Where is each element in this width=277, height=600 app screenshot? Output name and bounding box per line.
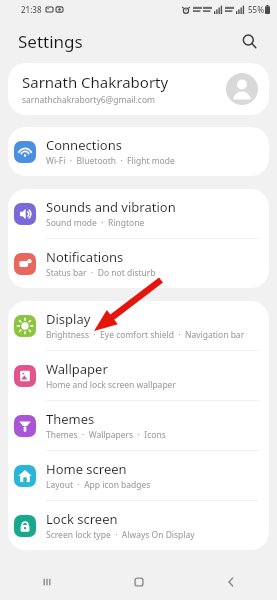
staticText: Brightness · Eye comfort shield · Naviga… (46, 329, 245, 341)
staticText: Themes · Wallpapers · Icons (46, 429, 166, 441)
button[interactable]: Wallpaper (8, 351, 269, 400)
button[interactable]: Sarnath Chakraborty (8, 63, 269, 115)
button[interactable]: Lock screen (8, 501, 269, 550)
button[interactable]: Home screen (8, 451, 269, 500)
button[interactable]: Connections (8, 127, 269, 176)
button[interactable]: Themes (8, 401, 269, 450)
staticText: Status bar · Do not disturb (46, 267, 156, 279)
staticText: Settings (18, 30, 83, 53)
button[interactable]: Display (8, 301, 269, 350)
staticText: Screen lock type · Always On Display (46, 529, 195, 541)
staticText: Lock screen (46, 510, 118, 528)
staticText: Notifications (46, 248, 124, 266)
staticText: Wi-Fi · Bluetooth · Flight mode (46, 155, 175, 167)
staticText: Sound mode · Ringtone (46, 217, 145, 229)
staticText: Sounds and vibration (46, 198, 176, 216)
staticText: Connections (46, 136, 122, 154)
staticText: Home screen (46, 460, 127, 478)
button[interactable]: Back (185, 564, 277, 600)
staticText: Wallpaper (46, 360, 108, 378)
staticText: 21:38 (21, 4, 42, 15)
button[interactable]: Recents (0, 564, 93, 600)
staticText: Home and lock screen wallpaper (46, 379, 176, 391)
staticText: sarnathchakraborty6@gmail.com (22, 94, 156, 106)
staticText: 55% (248, 4, 264, 15)
staticText: Layout · App icon badges (46, 479, 151, 491)
button[interactable]: Home (93, 564, 185, 600)
staticText: Sarnath Chakraborty (22, 72, 169, 92)
staticText: Display (46, 310, 91, 328)
button[interactable]: Notifications (8, 239, 269, 288)
staticText: Themes (46, 410, 95, 428)
button[interactable]: Search (233, 25, 265, 57)
button[interactable]: Sounds and vibration (8, 189, 269, 238)
